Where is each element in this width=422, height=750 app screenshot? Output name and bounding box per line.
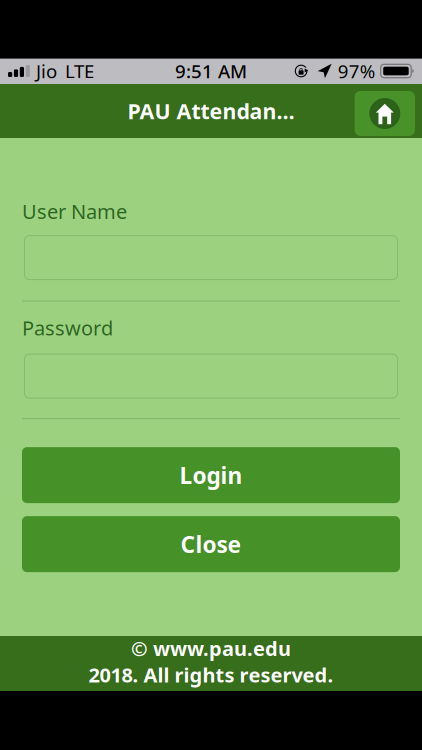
staticText: User Name: [22, 198, 127, 225]
staticText: © www.pau.edu: [131, 635, 291, 661]
staticText: Jio: [36, 59, 57, 83]
button[interactable]: Home: [355, 91, 415, 136]
staticText: Login: [179, 460, 242, 490]
staticText: 2018. All rights reserved.: [88, 661, 333, 688]
staticText: 97%: [338, 59, 376, 83]
button[interactable]: Close: [22, 516, 400, 572]
button[interactable]: Login: [22, 447, 400, 503]
staticText: Password: [22, 315, 113, 341]
staticText: PAU Attendan…: [127, 97, 294, 125]
staticText: LTE: [65, 59, 94, 83]
staticText: Close: [180, 529, 241, 559]
staticText: 9:51 AM: [175, 59, 247, 83]
